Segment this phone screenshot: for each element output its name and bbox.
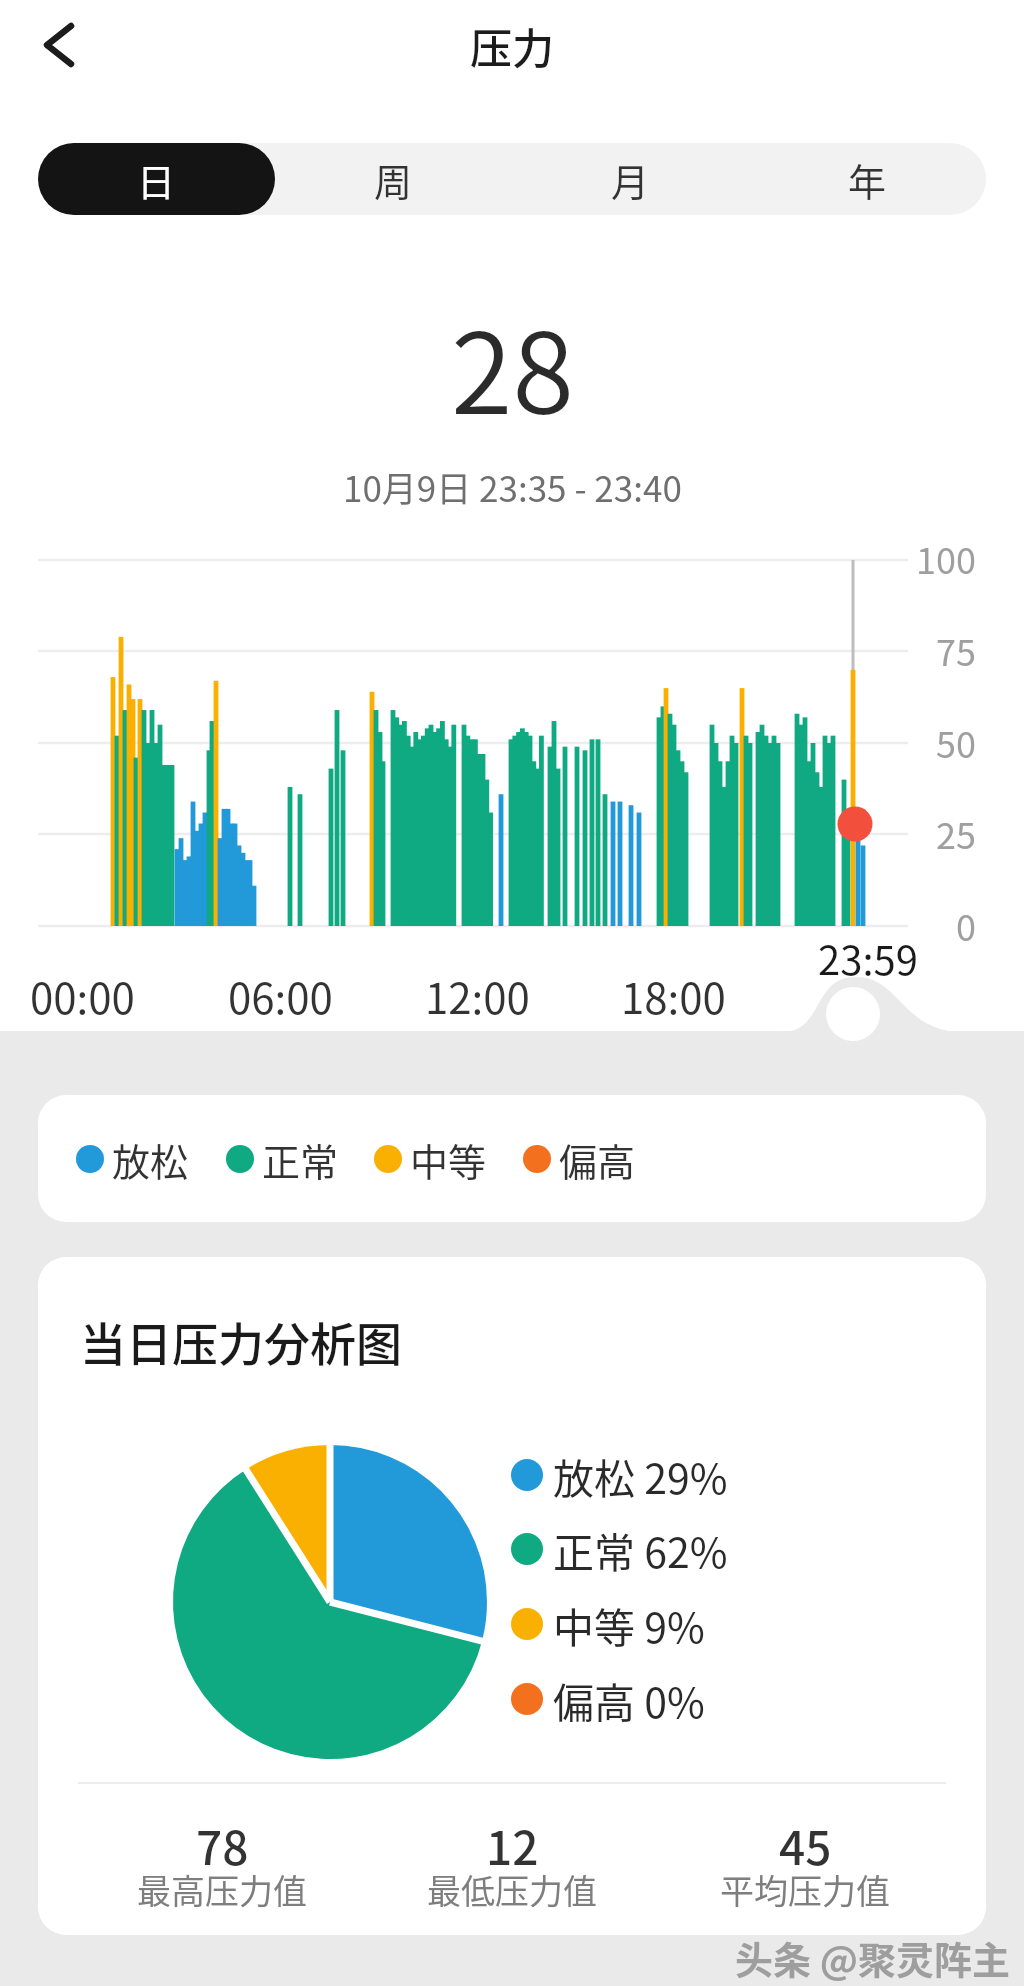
staticText: 偏高 0% [553, 1670, 705, 1729]
staticText: 正常 [262, 1132, 339, 1187]
button[interactable] [26, 12, 92, 78]
staticText: 当日压力分析图 [80, 1308, 402, 1372]
staticText: 10月9日 23:35 - 23:40 [343, 461, 682, 512]
staticText: 75 [936, 624, 976, 676]
staticText: 最低压力值 [427, 1865, 597, 1914]
button[interactable]: 年 [749, 143, 986, 215]
staticText: 18:00 [621, 965, 726, 1026]
staticText: 最高压力值 [137, 1865, 307, 1914]
staticText: 25 [936, 807, 976, 859]
button[interactable]: 周 [275, 143, 512, 215]
staticText: 月 [611, 152, 650, 207]
staticText: 偏高 [559, 1132, 636, 1187]
staticText: 中等 [410, 1132, 487, 1187]
button[interactable]: 月 [512, 143, 749, 215]
staticText: 头条 @聚灵阵主 [735, 1930, 1010, 1982]
staticText: 日 [137, 152, 176, 207]
staticText: 23:59 [818, 929, 918, 987]
button[interactable] [38, 143, 275, 215]
staticText: 0 [956, 899, 976, 951]
staticText: 78 [196, 1812, 249, 1879]
staticText: 年 [848, 152, 887, 207]
staticText: 50 [936, 716, 976, 768]
staticText: 28 [451, 284, 574, 446]
staticText: 平均压力值 [720, 1865, 890, 1914]
staticText: 正常 62% [553, 1520, 728, 1579]
staticText: 周 [374, 152, 413, 207]
staticText: 12 [486, 1812, 539, 1879]
staticText: 12:00 [425, 965, 530, 1026]
staticText: 中等 9% [553, 1595, 705, 1654]
staticText: 45 [779, 1812, 832, 1879]
staticText: 放松 29% [553, 1446, 728, 1505]
staticText: 06:00 [228, 965, 333, 1026]
staticText: 00:00 [30, 965, 135, 1026]
staticText: 放松 [112, 1132, 189, 1187]
staticText: 100 [916, 532, 976, 584]
staticText: 压力 [470, 15, 555, 76]
